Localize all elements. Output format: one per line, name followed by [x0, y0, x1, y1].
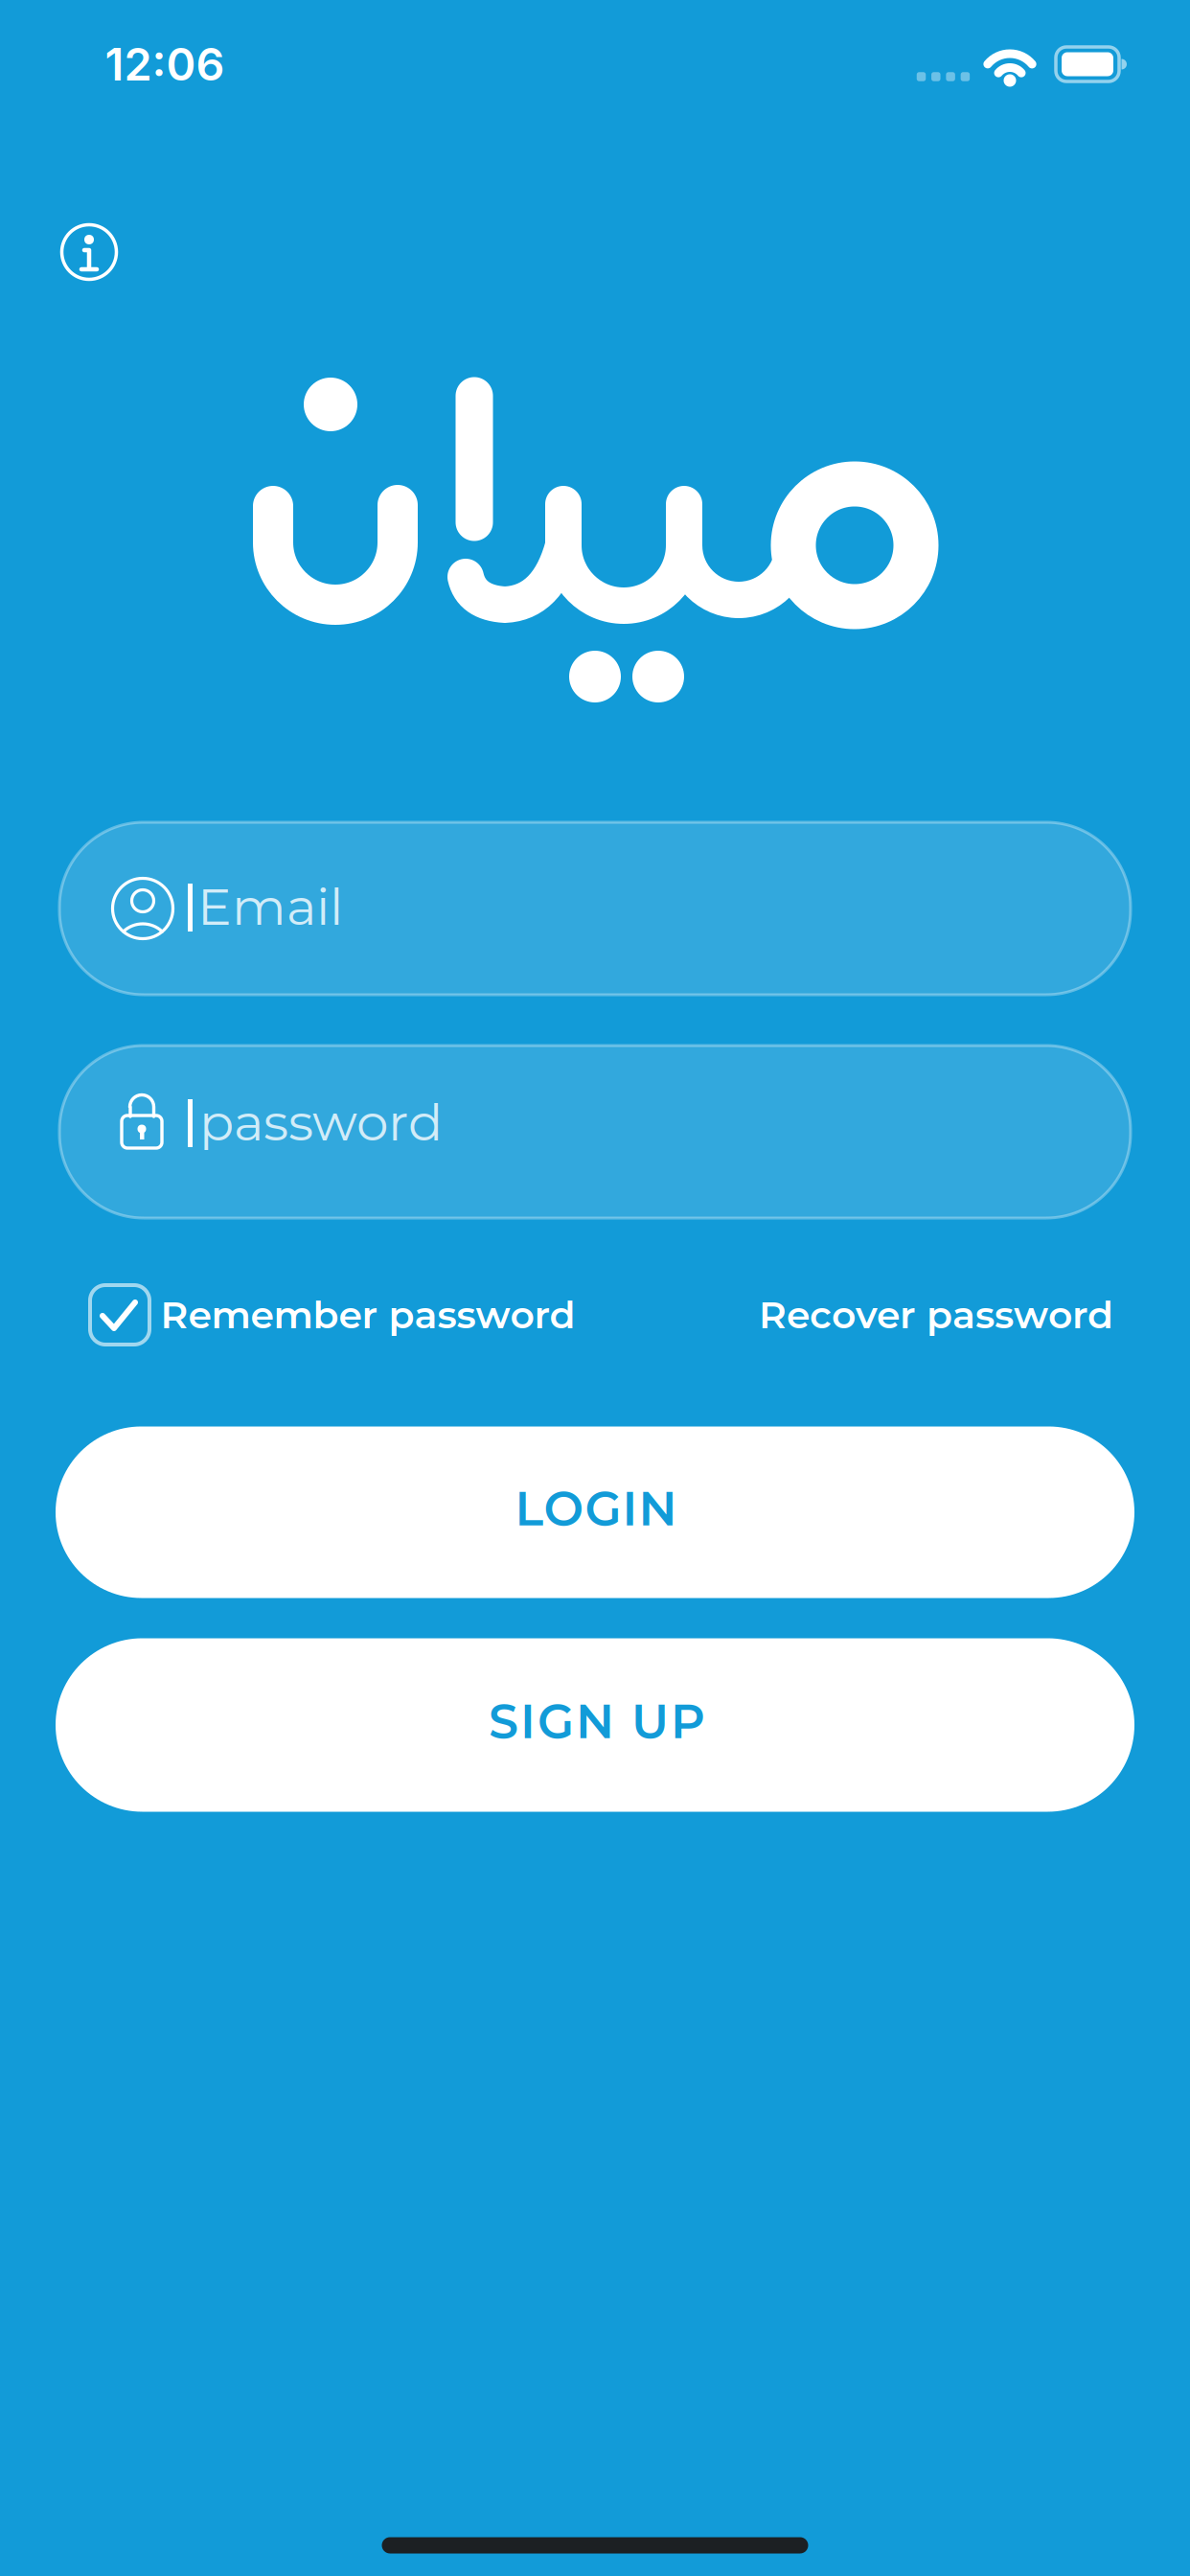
staticText: LOGIN [515, 1480, 677, 1537]
staticText: Recover password [759, 1292, 1113, 1338]
staticText: Remember password [160, 1292, 575, 1338]
staticText: SIGN UP [489, 1692, 705, 1750]
staticText: Email [197, 875, 343, 938]
staticText: password [199, 1091, 443, 1153]
staticText: 12:06 [105, 37, 225, 91]
